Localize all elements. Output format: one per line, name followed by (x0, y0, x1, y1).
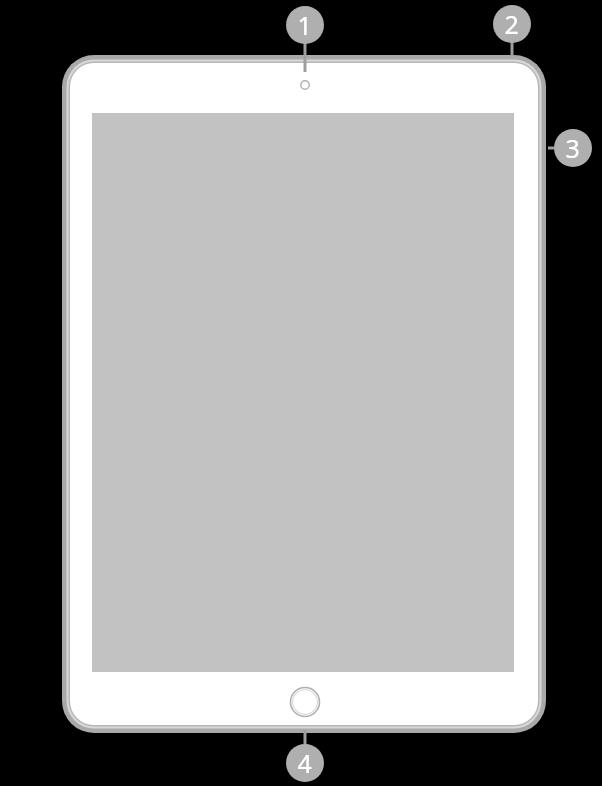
button[interactable]: iPad front view diagram with callouts (0, 0, 602, 786)
